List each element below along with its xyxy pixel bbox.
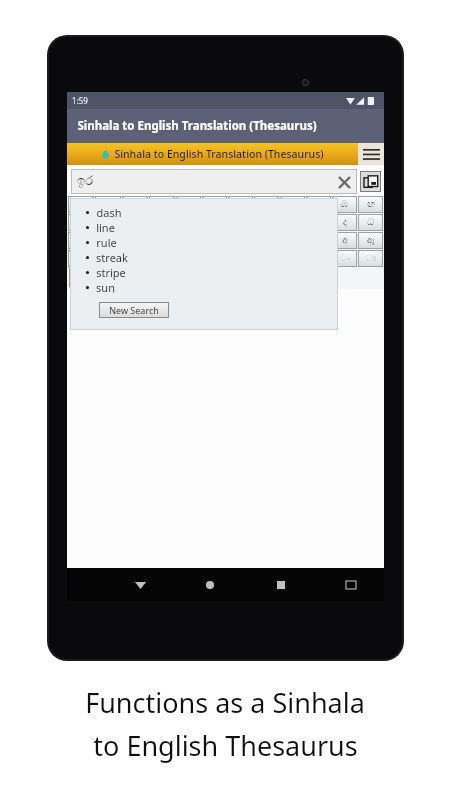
button[interactable]: ං <box>332 250 357 267</box>
button[interactable]: Sinhala to English Translation (Thesauru… <box>67 143 358 165</box>
staticText: to English Thesaurus <box>93 727 358 764</box>
button[interactable]: Recent apps <box>266 570 296 600</box>
button[interactable]: ඹ <box>332 196 357 213</box>
button[interactable]: ෂ <box>254 196 279 213</box>
button[interactable]: ම <box>280 196 305 213</box>
staticText: ද <box>343 218 347 227</box>
button[interactable]: stripe <box>86 265 126 280</box>
staticText: sun <box>96 280 115 295</box>
button[interactable]: sun <box>86 280 115 295</box>
button[interactable]: ර <box>122 196 148 213</box>
staticText: ෞ <box>105 273 123 282</box>
button[interactable]: ඉර <box>71 169 357 194</box>
button[interactable]: ධ <box>358 214 383 231</box>
button[interactable]: ඟ <box>358 196 383 213</box>
button[interactable]: ල <box>149 196 175 213</box>
button[interactable]: Clear <box>334 172 354 192</box>
button[interactable]: rule <box>86 235 117 250</box>
button[interactable]: New Search <box>99 302 169 318</box>
button[interactable]: ෞ <box>100 268 128 287</box>
button[interactable]: න <box>68 232 94 249</box>
button[interactable]: ි <box>68 250 94 267</box>
button[interactable]: ඃ <box>358 250 383 267</box>
button[interactable]: ො <box>69 268 97 287</box>
button[interactable]: ඇ <box>358 232 383 249</box>
button[interactable]: ී <box>95 250 121 267</box>
button[interactable]: ය <box>68 196 94 213</box>
button[interactable]: ශ <box>228 196 253 213</box>
staticText: line <box>96 220 115 235</box>
button[interactable]: Sinhala to English Translation (Thesauru… <box>67 109 384 143</box>
button[interactable]: ජ <box>68 214 94 231</box>
button[interactable]: ව <box>95 196 121 213</box>
button[interactable]: Home <box>195 570 225 600</box>
button[interactable]: හ <box>176 196 201 213</box>
button[interactable]: Menu <box>358 143 384 165</box>
button[interactable]: ස <box>202 196 227 213</box>
staticText: stripe <box>96 265 126 280</box>
button[interactable]: භ <box>306 196 331 213</box>
button[interactable]: ච <box>95 214 121 231</box>
button[interactable]: අ <box>332 232 357 249</box>
staticText: ඳ <box>106 236 111 245</box>
button[interactable]: ඳ <box>95 232 121 249</box>
staticText: ඟ <box>367 200 375 209</box>
staticText: 1:59 <box>72 95 88 106</box>
staticText: Functions as a Sinhala <box>85 684 365 721</box>
button[interactable]: ු <box>122 250 148 267</box>
button[interactable]: Back <box>125 570 155 600</box>
button[interactable]: dash <box>86 205 122 220</box>
button[interactable]: Switch keyboard <box>360 171 381 192</box>
button[interactable]: line <box>86 220 115 235</box>
button[interactable]: ද <box>332 214 357 231</box>
staticText: ං <box>340 254 350 263</box>
button[interactable]: Keyboard <box>336 570 366 600</box>
button[interactable]: streak <box>86 250 128 265</box>
staticText: New Search <box>109 304 159 316</box>
